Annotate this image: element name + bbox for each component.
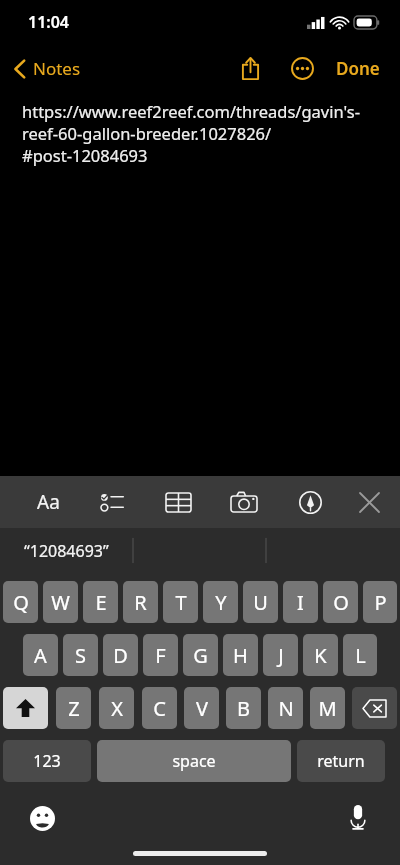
staticText: I bbox=[297, 589, 304, 616]
staticText: reef-60-gallon-breeder.1027826/ bbox=[22, 122, 272, 144]
staticText: V bbox=[196, 695, 208, 722]
button[interactable]: C bbox=[142, 687, 177, 729]
button[interactable]: N bbox=[268, 687, 303, 729]
button[interactable]: Checklist bbox=[90, 480, 134, 524]
button[interactable]: space bbox=[97, 740, 291, 782]
button[interactable]: B bbox=[226, 687, 261, 729]
button[interactable]: Close toolbar bbox=[346, 479, 392, 525]
button[interactable]: U bbox=[243, 581, 278, 623]
button[interactable]: P bbox=[363, 581, 397, 623]
button[interactable]: Y bbox=[203, 581, 238, 623]
button[interactable]: Camera bbox=[222, 480, 266, 524]
staticText: R bbox=[134, 589, 147, 616]
staticText: X bbox=[111, 695, 123, 722]
button[interactable]: Markup bbox=[288, 480, 332, 524]
button[interactable]: More options bbox=[282, 48, 322, 88]
button[interactable]: A bbox=[23, 634, 58, 676]
button[interactable]: E bbox=[83, 581, 118, 623]
staticText: “12084693” bbox=[24, 540, 109, 562]
staticText: https://www.reef2reef.com/threads/gavin'… bbox=[22, 100, 360, 122]
staticText: O bbox=[333, 589, 349, 616]
staticText: W bbox=[51, 589, 70, 616]
staticText: N bbox=[278, 695, 294, 722]
staticText: space bbox=[172, 750, 216, 772]
button[interactable]: Q bbox=[3, 581, 38, 623]
staticText: Y bbox=[215, 589, 227, 616]
button[interactable]: S bbox=[63, 634, 98, 676]
staticText: A bbox=[34, 642, 47, 669]
button[interactable]: L bbox=[343, 634, 377, 676]
staticText: K bbox=[314, 642, 327, 669]
button[interactable]: X bbox=[99, 687, 134, 729]
button[interactable]: I bbox=[283, 581, 318, 623]
button[interactable]: Table bbox=[156, 480, 200, 524]
staticText: H bbox=[233, 642, 248, 669]
staticText: B bbox=[237, 695, 250, 722]
button[interactable]: Backspace bbox=[352, 687, 397, 729]
staticText: S bbox=[75, 642, 86, 669]
button[interactable]: 123 bbox=[3, 740, 91, 782]
staticText: #post-12084693 bbox=[22, 144, 148, 166]
button[interactable]: Text format bbox=[26, 480, 70, 524]
button[interactable]: return bbox=[297, 740, 385, 782]
staticText: E bbox=[95, 589, 107, 616]
staticText: 123 bbox=[33, 750, 61, 772]
staticText: return bbox=[317, 750, 365, 772]
button[interactable]: Dictation bbox=[338, 798, 378, 838]
button[interactable]: F bbox=[143, 634, 178, 676]
button[interactable]: H bbox=[223, 634, 258, 676]
staticText: 11:04 bbox=[28, 11, 70, 33]
staticText: J bbox=[278, 642, 284, 669]
button[interactable]: T bbox=[163, 581, 198, 623]
button[interactable]: D bbox=[103, 634, 138, 676]
staticText: D bbox=[113, 642, 128, 669]
staticText: Notes bbox=[33, 57, 81, 80]
button[interactable]: Notes bbox=[8, 51, 87, 86]
button[interactable]: W bbox=[43, 581, 78, 623]
staticText: Q bbox=[13, 589, 29, 616]
button[interactable]: J bbox=[263, 634, 298, 676]
button[interactable]: “12084693” bbox=[0, 528, 133, 573]
button[interactable]: R bbox=[123, 581, 158, 623]
button[interactable]: Emoji bbox=[22, 798, 62, 838]
button[interactable]: O bbox=[323, 581, 358, 623]
staticText: L bbox=[355, 642, 366, 669]
staticText: G bbox=[193, 642, 208, 669]
button[interactable]: Done bbox=[330, 49, 386, 88]
button[interactable]: V bbox=[184, 687, 219, 729]
staticText: T bbox=[175, 589, 187, 616]
staticText: C bbox=[153, 695, 166, 722]
button[interactable]: Z bbox=[56, 687, 91, 729]
staticText: P bbox=[374, 589, 387, 616]
staticText: Done bbox=[336, 57, 380, 80]
button[interactable]: Share bbox=[230, 48, 270, 88]
button[interactable]: G bbox=[183, 634, 218, 676]
staticText: F bbox=[155, 642, 166, 669]
button[interactable]: Shift bbox=[3, 687, 48, 729]
button[interactable]: K bbox=[303, 634, 338, 676]
staticText: Z bbox=[68, 695, 80, 722]
staticText: U bbox=[253, 589, 268, 616]
staticText: M bbox=[318, 695, 337, 722]
staticText: Aa bbox=[37, 489, 60, 515]
button[interactable]: M bbox=[310, 687, 345, 729]
